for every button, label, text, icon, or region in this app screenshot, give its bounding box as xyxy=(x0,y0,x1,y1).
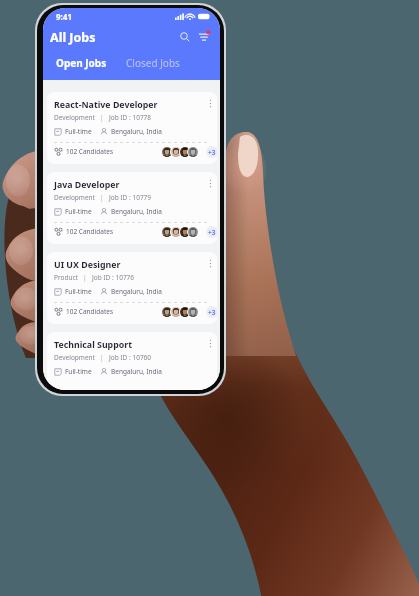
staticText: +3 xyxy=(208,308,216,317)
button[interactable]: Search xyxy=(176,28,194,46)
staticText: +3 xyxy=(208,148,216,157)
staticText: | xyxy=(95,193,109,202)
staticText: | xyxy=(78,273,92,282)
staticText: Development xyxy=(54,193,95,202)
button[interactable]: More options xyxy=(204,97,216,109)
staticText: Full-time xyxy=(65,207,92,216)
staticText: | xyxy=(95,353,109,362)
staticText: 102 Candidates xyxy=(66,147,114,156)
staticText: Full-time xyxy=(65,287,92,296)
button[interactable]: React-Native Developer xyxy=(47,92,217,164)
staticText: 9:41 xyxy=(56,11,72,22)
staticText: Job ID : 10779 xyxy=(109,193,152,202)
button[interactable]: Java Developer xyxy=(47,172,217,244)
staticText: Development xyxy=(54,113,95,122)
staticText: Development xyxy=(54,353,95,362)
button[interactable]: More options xyxy=(204,257,216,269)
button[interactable]: Filter xyxy=(195,28,213,46)
button[interactable]: UI UX Designer xyxy=(47,252,217,324)
button[interactable]: Open Jobs xyxy=(50,54,113,72)
staticText: Full-time xyxy=(65,127,92,136)
staticText: Technical Support xyxy=(54,339,132,351)
staticText: React-Native Developer xyxy=(54,99,158,111)
button[interactable]: More options xyxy=(204,337,216,349)
staticText: Bengaluru, India xyxy=(111,287,162,296)
staticText: +3 xyxy=(208,228,216,237)
staticText: 102 Candidates xyxy=(66,227,114,236)
staticText: Bengaluru, India xyxy=(111,127,162,136)
staticText: Job ID : 10776 xyxy=(92,273,135,282)
button[interactable]: More options xyxy=(204,177,216,189)
staticText: Full-time xyxy=(65,367,92,376)
staticText: Job ID : 10760 xyxy=(109,353,152,362)
staticText: Java Developer xyxy=(54,179,120,191)
staticText: Product xyxy=(54,273,78,282)
staticText: Closed Jobs xyxy=(126,56,180,70)
staticText: UI UX Designer xyxy=(54,259,121,271)
staticText: Bengaluru, India xyxy=(111,207,162,216)
staticText: Bengaluru, India xyxy=(111,367,162,376)
staticText: Job ID : 10778 xyxy=(109,113,152,122)
button[interactable]: Technical Support xyxy=(47,332,217,390)
staticText: Open Jobs xyxy=(56,56,107,70)
staticText: 102 Candidates xyxy=(66,307,114,316)
staticText: | xyxy=(95,113,109,122)
button[interactable]: Closed Jobs xyxy=(120,54,186,72)
staticText: All Jobs xyxy=(50,29,96,46)
